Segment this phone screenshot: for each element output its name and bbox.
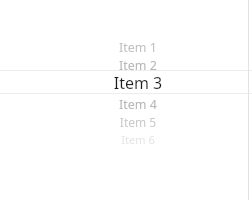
button[interactable]: Item 1 [0,38,252,56]
button[interactable]: Item 4 [0,95,252,113]
staticText: Item 1 [12,39,252,56]
button[interactable]: Item 2 [0,56,252,74]
staticText: Item 3 [12,72,252,94]
other: Item picker wheel [0,0,252,200]
staticText: Item 5 [12,114,252,130]
button[interactable]: Item 5 [0,113,252,131]
button[interactable]: Item 6 [0,130,252,148]
staticText: Item 4 [12,96,252,113]
staticText: Item 6 [12,132,252,147]
button[interactable]: Item 3 [0,71,252,94]
staticText: Item 2 [12,57,252,74]
